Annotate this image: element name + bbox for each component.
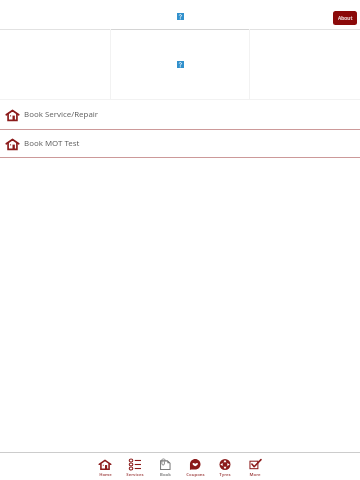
button[interactable]: Book Service/Repair [0, 100, 360, 129]
staticText: Coupons [186, 471, 205, 477]
button[interactable]: About [333, 11, 357, 25]
staticText: About [338, 15, 353, 22]
button[interactable]: Home [90, 459, 120, 477]
staticText: Book Service/Repair [24, 109, 99, 120]
button[interactable]: Services [120, 459, 150, 477]
button[interactable]: Book MOT Test [0, 130, 360, 157]
staticText: Book MOT Test [24, 138, 80, 149]
staticText: Services [126, 471, 144, 477]
staticText: Home [99, 471, 112, 477]
staticText: More [249, 471, 261, 477]
button[interactable]: Book [150, 459, 180, 477]
staticText: Book [160, 471, 171, 477]
button[interactable]: Coupons [180, 459, 210, 477]
button[interactable]: Tyres [210, 459, 240, 477]
button[interactable]: More [240, 459, 270, 477]
staticText: Tyres [219, 471, 231, 477]
